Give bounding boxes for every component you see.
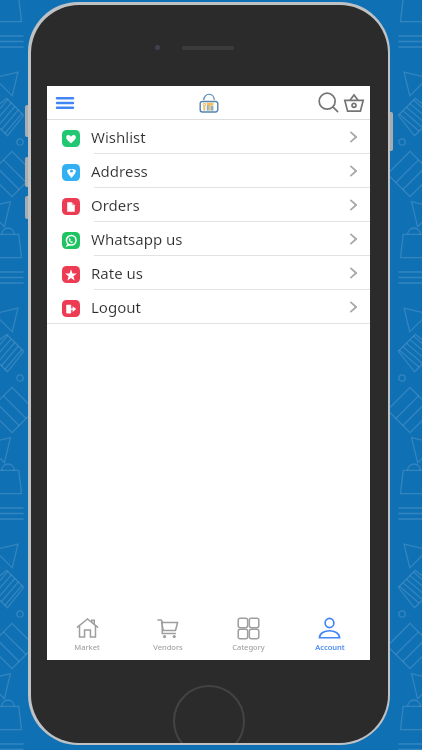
staticText: Whatsapp us: [91, 229, 183, 249]
button[interactable]: Orders: [47, 188, 370, 222]
button[interactable]: Logout: [47, 290, 370, 324]
staticText: Logout: [91, 297, 141, 317]
staticText: Rate us: [91, 263, 143, 283]
button[interactable]: Menu: [52, 89, 78, 117]
button[interactable]: Account: [289, 604, 370, 660]
button[interactable]: Market: [47, 604, 127, 660]
button[interactable]: Category: [208, 604, 289, 660]
button[interactable]: Search: [316, 90, 341, 115]
staticText: Orders: [91, 195, 140, 215]
button[interactable]: Wishlist: [47, 120, 370, 154]
button[interactable]: Vendors: [127, 604, 208, 660]
button[interactable]: Cart: [341, 90, 366, 115]
button[interactable]: Address: [47, 154, 370, 188]
staticText: Account: [315, 642, 345, 652]
staticText: Vendors: [153, 642, 183, 652]
button[interactable]: Rate us: [47, 256, 370, 290]
staticText: Wishlist: [91, 127, 146, 147]
staticText: Category: [232, 642, 265, 652]
staticText: Address: [91, 161, 148, 181]
button[interactable]: Whatsapp us: [47, 222, 370, 256]
staticText: Market: [74, 642, 100, 652]
